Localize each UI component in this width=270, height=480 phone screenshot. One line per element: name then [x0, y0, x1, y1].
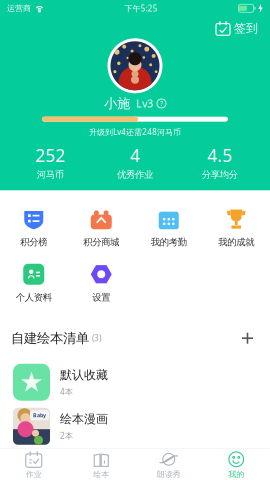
- staticText: 运营商: [7, 3, 31, 13]
- button[interactable]: 新建清单: [236, 327, 259, 350]
- staticText: 我的考勤: [151, 236, 187, 248]
- button[interactable]: 作业: [0, 451, 67, 479]
- staticText: 我的成就: [218, 236, 254, 248]
- staticText: (3): [92, 333, 101, 343]
- staticText: 小施: [104, 95, 130, 112]
- button[interactable]: Baby: [0, 404, 270, 448]
- staticText: 积分商城: [83, 236, 119, 248]
- staticText: ?: [160, 99, 163, 108]
- button[interactable]: 绘本: [67, 451, 135, 479]
- staticText: 升级到Lv4还需248河马币: [89, 127, 181, 137]
- staticText: 绘本: [93, 469, 109, 479]
- staticText: 积分榜: [20, 236, 47, 248]
- staticText: 我的: [228, 469, 244, 479]
- staticText: 设置: [92, 292, 110, 303]
- staticText: 作业: [26, 469, 42, 479]
- staticText: 自建绘本清单: [11, 330, 89, 346]
- staticText: Lv3: [136, 96, 153, 111]
- staticText: 绘本漫画: [60, 411, 108, 426]
- staticText: Baby: [33, 412, 46, 419]
- staticText: 4.5: [207, 144, 232, 167]
- button[interactable]: 个人资料: [0, 263, 67, 303]
- staticText: 签到: [234, 21, 258, 36]
- button[interactable]: 我的成就: [202, 207, 270, 248]
- staticText: 2本: [60, 430, 73, 441]
- button[interactable]: 签到: [212, 18, 262, 39]
- staticText: 默认收藏: [60, 367, 108, 382]
- button[interactable]: 我的考勤: [135, 207, 202, 248]
- staticText: 优秀作业: [117, 169, 153, 180]
- staticText: 河马币: [37, 169, 64, 180]
- staticText: 下午5:25: [124, 3, 157, 14]
- staticText: 4: [130, 144, 140, 167]
- staticText: 4本: [60, 386, 73, 397]
- staticText: 朗读秀: [157, 469, 181, 479]
- button[interactable]: 设置: [67, 263, 135, 303]
- button[interactable]: 我的: [202, 451, 270, 479]
- button[interactable]: 默认收藏: [0, 360, 270, 404]
- staticText: 分享均分: [202, 169, 238, 180]
- button[interactable]: 积分榜: [0, 207, 67, 248]
- button[interactable]: 朗读秀: [135, 451, 202, 479]
- staticText: 个人资料: [16, 292, 52, 303]
- staticText: 252: [35, 144, 65, 167]
- button[interactable]: 积分商城: [67, 207, 135, 248]
